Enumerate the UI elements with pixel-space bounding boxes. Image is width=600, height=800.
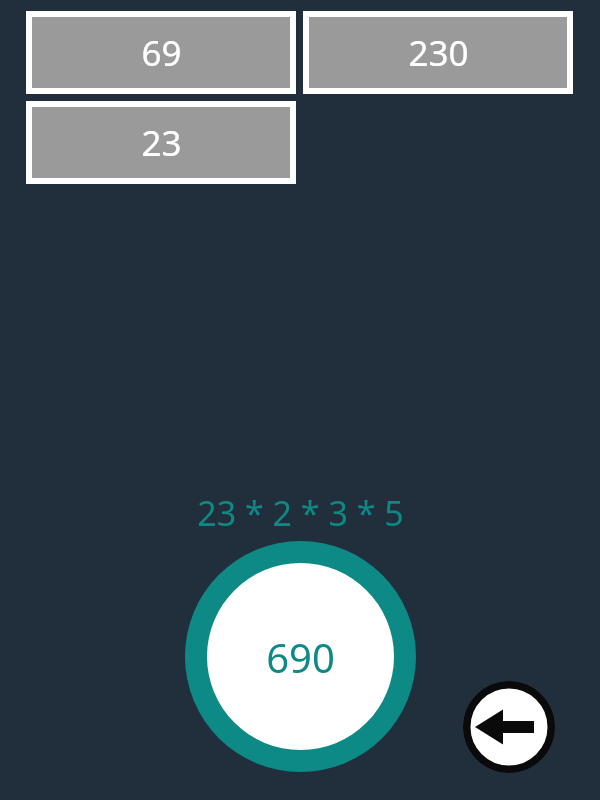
staticText: 690 xyxy=(266,630,335,684)
button[interactable]: 23 xyxy=(26,101,296,184)
staticText: 230 xyxy=(408,29,469,77)
button[interactable]: 690 xyxy=(185,541,416,772)
staticText: 69 xyxy=(141,29,182,77)
button[interactable]: 69 xyxy=(26,11,296,94)
button[interactable]: Back xyxy=(463,681,555,773)
staticText: 23 * 2 * 3 * 5 xyxy=(197,490,404,536)
button[interactable]: 230 xyxy=(303,11,573,94)
staticText: 23 xyxy=(141,119,182,167)
